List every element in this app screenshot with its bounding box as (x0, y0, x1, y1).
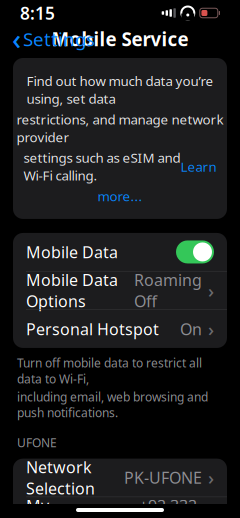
button[interactable]: Mobile Data toggle (176, 240, 214, 263)
staticText: Mobile Data (26, 241, 118, 262)
staticText: Turn off mobile data to restrict all dat… (17, 355, 202, 387)
staticText: Roaming Off (134, 269, 202, 312)
staticText: PK-UFONE (124, 467, 202, 488)
button[interactable]: Mobile Data Options (13, 271, 227, 309)
staticText: including email, web browsing and push n… (17, 389, 208, 421)
button[interactable]: Personal Hotspot (13, 310, 227, 348)
staticText: On (180, 318, 202, 339)
button[interactable]: Learn (180, 158, 216, 175)
button[interactable]: more... (97, 187, 142, 205)
staticText: UFONE (17, 435, 57, 451)
button[interactable]: Mobile Data (13, 233, 227, 271)
staticText: Learn (180, 158, 216, 175)
staticText: ‹ (12, 20, 21, 58)
staticText: Personal Hotspot (26, 318, 159, 339)
staticText: Mobile Data Options (26, 269, 118, 312)
button[interactable]: Network Selection (13, 459, 227, 497)
button[interactable]: ‹ (4, 16, 103, 62)
staticText: Find out how much data you’re using, set… (26, 72, 213, 107)
staticText: restrictions, and manage network provide… (16, 110, 223, 146)
staticText: 8:15 (20, 1, 55, 24)
staticText: Network Selection (26, 456, 95, 499)
button[interactable]: My Number (13, 497, 227, 518)
staticText: › (208, 316, 214, 341)
staticText: Mobile Service (51, 27, 188, 51)
staticText: settings such as eSIM and Wi-Fi calling. (23, 149, 180, 184)
staticText: My Number (26, 495, 89, 518)
staticText: +92 332 9473312 (139, 495, 202, 518)
staticText: › (208, 278, 214, 303)
staticText: more... (97, 187, 142, 205)
staticText: Settings (23, 27, 95, 51)
staticText: › (208, 465, 214, 490)
